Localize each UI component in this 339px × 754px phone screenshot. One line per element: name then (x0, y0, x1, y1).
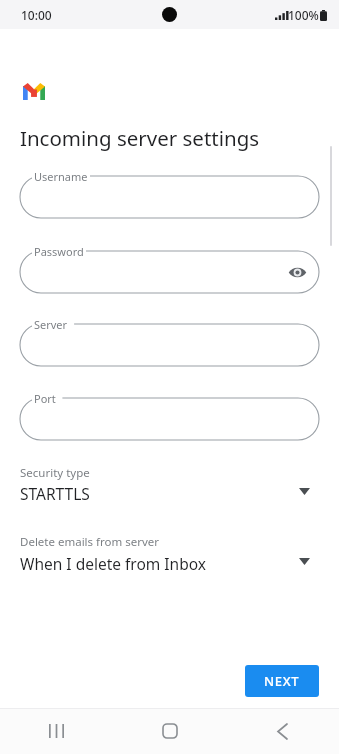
button[interactable]: Server (20, 324, 319, 366)
staticText: 10:00 (21, 7, 52, 23)
staticText: Server (34, 317, 68, 332)
staticText: Username (34, 169, 88, 184)
button[interactable]: Username (20, 176, 319, 218)
staticText: Delete emails from server (20, 534, 160, 550)
staticText: NEXT (264, 672, 300, 690)
staticText: STARTTLS (20, 483, 90, 504)
button[interactable]: Recent apps (0, 708, 113, 754)
button[interactable]: Delete emails from server (0, 528, 339, 576)
button[interactable]: Back (226, 708, 339, 754)
button[interactable]: Security type (0, 459, 339, 506)
staticText: Port (34, 391, 56, 406)
staticText: Incoming server settings (20, 124, 260, 152)
staticText: Password (34, 244, 84, 259)
staticText: When I delete from Inbox (20, 553, 206, 574)
staticText: 100% (288, 7, 319, 23)
staticText: Security type (20, 465, 90, 481)
button[interactable]: Home (113, 708, 226, 754)
button[interactable]: Password (20, 251, 319, 293)
button[interactable]: NEXT (245, 665, 319, 697)
button[interactable]: Show password (286, 261, 308, 283)
button[interactable]: Port (20, 398, 319, 440)
